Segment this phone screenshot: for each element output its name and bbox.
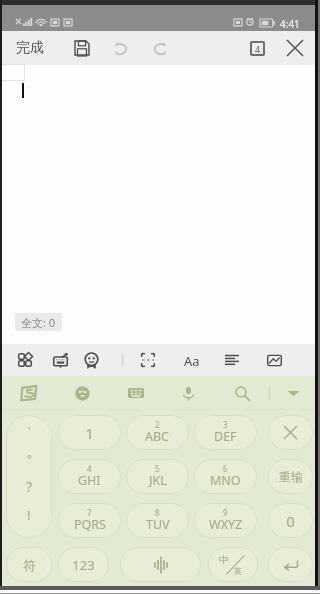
staticText: 7: [87, 507, 92, 518]
button[interactable]: Voice: [120, 547, 201, 582]
button[interactable]: Backspace: [268, 415, 313, 450]
button[interactable]: 8TUV: [126, 503, 189, 538]
button[interactable]: Search: [228, 379, 256, 407]
staticText: 123: [72, 556, 95, 574]
staticText: PQRS: [74, 516, 106, 533]
button[interactable]: Emoji: [68, 379, 96, 407]
staticText: 1: [85, 423, 94, 443]
button[interactable]: Keyboard: [46, 346, 74, 374]
button[interactable]: 3DEF: [194, 415, 257, 450]
staticText: TUV: [146, 516, 170, 533]
staticText: DEF: [214, 428, 237, 445]
staticText: 4:41: [280, 17, 300, 31]
button[interactable]: Aa: [178, 347, 206, 375]
staticText: 8: [155, 507, 160, 518]
staticText: 0: [286, 511, 295, 531]
button[interactable]: Enter: [268, 547, 313, 582]
staticText: 3: [223, 419, 228, 430]
button[interactable]: 1: [58, 415, 121, 450]
staticText: ?: [26, 477, 33, 496]
button[interactable]: Sogou input: [15, 379, 43, 407]
button[interactable]: List: [218, 346, 246, 374]
staticText: 全文: 0: [21, 315, 56, 330]
staticText: JKL: [149, 472, 167, 489]
staticText: 4: [87, 463, 92, 474]
button[interactable]: Scan: [134, 346, 162, 374]
staticText: 6: [223, 463, 228, 474]
staticText: !: [27, 506, 31, 524]
button[interactable]: Tabs: [242, 36, 272, 60]
button[interactable]: 9WXYZ: [194, 503, 257, 538]
staticText: 4: [255, 43, 261, 55]
staticText: GHI: [78, 472, 101, 489]
button[interactable]: 0: [268, 503, 313, 538]
button[interactable]: 5JKL: [126, 459, 189, 494]
staticText: MNO: [210, 472, 241, 489]
button[interactable]: Save: [68, 34, 96, 62]
staticText: 完成: [16, 39, 44, 57]
button[interactable]: 123: [58, 547, 109, 582]
staticText: Aa: [184, 352, 200, 370]
staticText: ABC: [145, 428, 170, 445]
staticText: WXYZ: [209, 516, 243, 533]
button[interactable]: 7PQRS: [58, 503, 121, 538]
button[interactable]: Emoji: [77, 346, 105, 374]
button[interactable]: 2ABC: [126, 415, 189, 450]
button[interactable]: Undo: [107, 34, 135, 62]
staticText: ': [28, 423, 31, 438]
button[interactable]: 重输: [268, 459, 313, 494]
button[interactable]: 符: [6, 547, 52, 582]
button[interactable]: Close: [281, 34, 309, 62]
staticText: 9: [223, 507, 228, 518]
button[interactable]: Image: [260, 346, 288, 374]
button[interactable]: Voice input: [174, 379, 202, 407]
staticText: 重输: [279, 469, 303, 484]
button[interactable]: 全文: 0: [15, 313, 62, 331]
staticText: °: [27, 451, 32, 466]
staticText: 中: [219, 553, 229, 566]
staticText: 英: [234, 566, 242, 576]
button[interactable]: 4GHI: [58, 459, 121, 494]
button[interactable]: 中英: [208, 547, 258, 582]
button[interactable]: Redo: [145, 34, 173, 62]
button[interactable]: 6MNO: [194, 459, 257, 494]
button[interactable]: 完成: [10, 36, 50, 60]
button[interactable]: Keyboard: [122, 379, 150, 407]
button[interactable]: Hide keyboard: [279, 379, 307, 407]
staticText: 符: [23, 557, 36, 573]
button[interactable]: Symbols: [6, 415, 52, 538]
button[interactable]: Apps: [11, 346, 39, 374]
staticText: 2: [155, 419, 160, 430]
staticText: 5: [155, 463, 160, 474]
